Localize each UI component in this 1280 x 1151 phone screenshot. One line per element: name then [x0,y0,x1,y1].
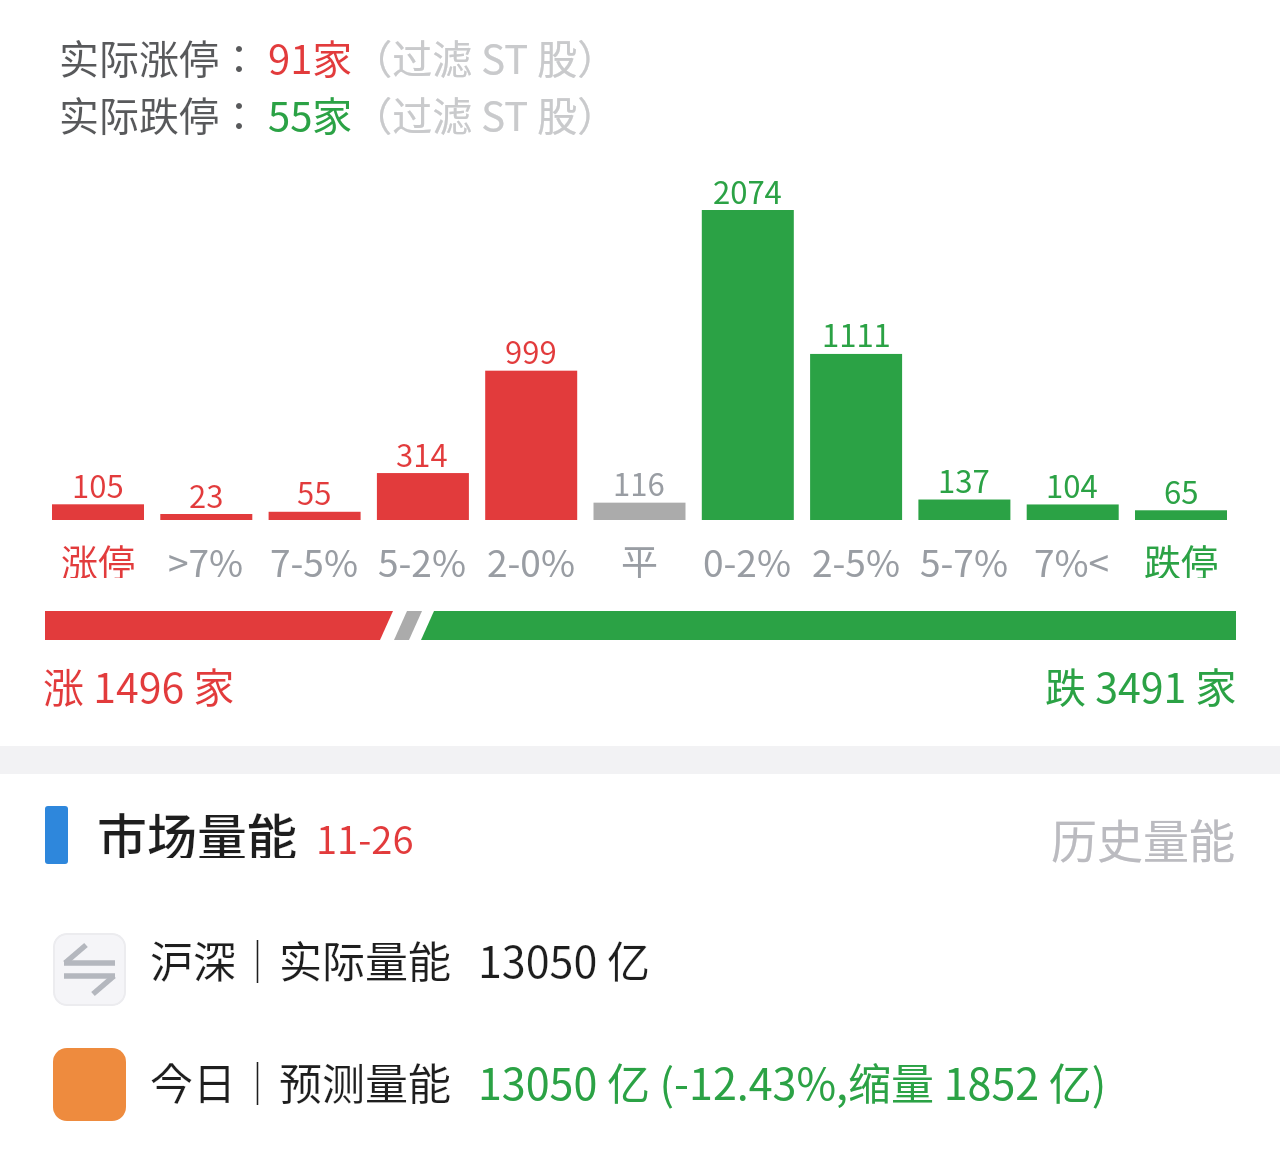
staticText: 市场量能 [97,798,297,858]
staticText: 314 [396,431,448,471]
staticText: 7%< [1034,534,1110,578]
staticText: >7% [168,534,244,578]
staticText: 历史量能 [1051,805,1235,865]
staticText: 999 [505,328,557,368]
staticText: 13050 亿 [478,928,650,988]
staticText: 2-5% [812,534,900,578]
staticText: 沪深｜实际量能 [150,928,451,988]
staticText: 涨停 [61,534,135,578]
staticText: 13050 亿 (-12.43%,缩量 1852 亿) [478,1050,1107,1110]
staticText: 5-2% [378,534,466,578]
staticText: 137 [938,457,990,497]
staticText: 今日｜预测量能 [150,1050,451,1110]
staticText: 实际跌停： 55家（过滤 ST 股） [59,85,618,143]
staticText: 0-2% [703,534,791,578]
staticText: 跌停 [1144,534,1218,578]
staticText: 1111 [822,311,891,351]
staticText: 105 [72,462,124,502]
staticText: 104 [1046,462,1098,502]
staticText: 23 [189,472,224,512]
staticText: 65 [1164,468,1199,508]
staticText: 11-26 [316,810,414,864]
staticText: 5-7% [920,534,1008,578]
staticText: 2074 [713,168,782,208]
staticText: 2-0% [487,534,575,578]
staticText: 平 [621,534,658,578]
staticText: 116 [613,460,665,500]
staticText: 涨 1496 家 [43,655,235,714]
staticText: 7-5% [270,534,358,578]
staticText: 跌 3491 家 [1045,655,1237,714]
staticText: 实际涨停： 91家（过滤 ST 股） [59,28,618,86]
staticText: 55 [297,469,332,509]
